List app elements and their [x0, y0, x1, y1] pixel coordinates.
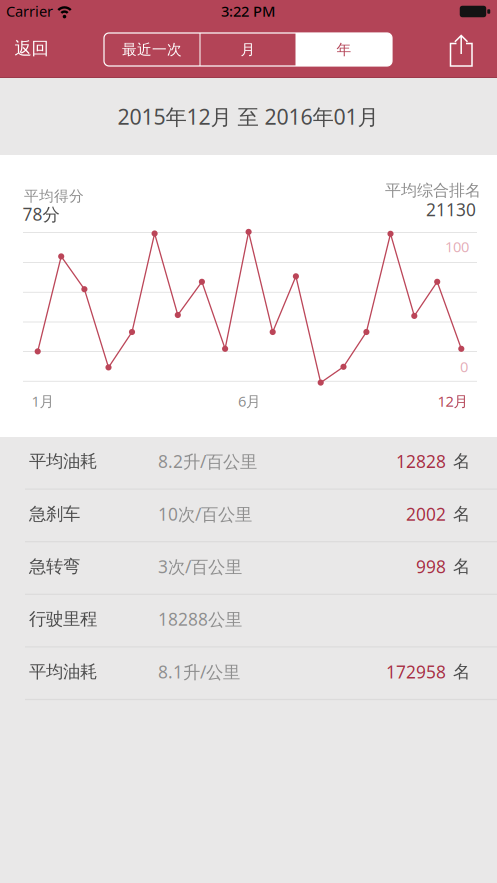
- staticText: 12月: [437, 391, 468, 411]
- staticText: 月: [240, 40, 255, 58]
- staticText: 平均综合排名: [385, 181, 481, 200]
- staticText: 8.2升/百公里: [158, 450, 257, 473]
- staticText: 年: [336, 40, 351, 58]
- staticText: 18288公里: [158, 608, 242, 631]
- staticText: 78分: [22, 202, 59, 225]
- staticText: 平均油耗: [29, 661, 97, 682]
- staticText: 行驶里程: [29, 608, 97, 630]
- staticText: 2015年12月 至 2016年01月: [117, 102, 378, 131]
- staticText: 172958: [386, 660, 446, 683]
- button[interactable]: Share: [444, 31, 478, 67]
- staticText: 6月: [238, 391, 261, 411]
- staticText: 急转弯: [29, 556, 80, 577]
- staticText: 12828: [396, 450, 446, 473]
- staticText: 2002: [406, 502, 446, 525]
- staticText: 100: [445, 237, 469, 256]
- staticText: Carrier: [6, 1, 53, 21]
- staticText: 3次/百公里: [158, 555, 242, 578]
- staticText: 998: [416, 555, 446, 578]
- staticText: 平均得分: [24, 187, 84, 205]
- staticText: 返回: [14, 38, 48, 59]
- staticText: 10次/百公里: [158, 502, 252, 525]
- button[interactable]: 月: [200, 33, 296, 66]
- staticText: 0: [460, 357, 468, 376]
- button[interactable]: 年: [296, 33, 392, 66]
- staticText: 平均油耗: [29, 451, 97, 472]
- button[interactable]: 返回: [14, 38, 48, 59]
- staticText: 名: [453, 503, 470, 525]
- staticText: 名: [453, 661, 470, 682]
- staticText: 急刹车: [29, 503, 80, 525]
- staticText: 名: [453, 556, 470, 577]
- staticText: 21130: [426, 198, 476, 221]
- staticText: 1月: [31, 391, 54, 411]
- staticText: 最近一次: [122, 40, 182, 58]
- staticText: 名: [453, 451, 470, 472]
- staticText: 8.1升/公里: [158, 660, 240, 683]
- button[interactable]: 最近一次: [104, 33, 200, 66]
- staticText: 3:22 PM: [221, 1, 275, 21]
